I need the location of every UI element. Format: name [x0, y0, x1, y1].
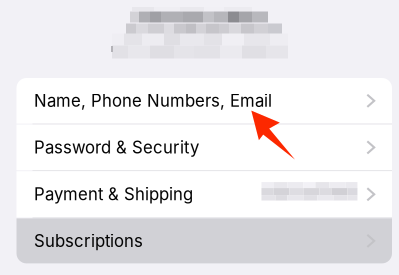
staticText: Subscriptions — [34, 231, 143, 251]
staticText: Name, Phone Numbers, Email — [34, 91, 272, 111]
button[interactable]: Name, Phone Numbers, Email — [16, 78, 392, 124]
staticText: Password & Security — [34, 137, 199, 157]
button[interactable]: Payment & Shipping — [16, 171, 392, 217]
button[interactable]: Password & Security — [16, 125, 392, 170]
button[interactable]: Subscriptions — [16, 218, 392, 263]
staticText: Payment & Shipping — [34, 184, 193, 204]
